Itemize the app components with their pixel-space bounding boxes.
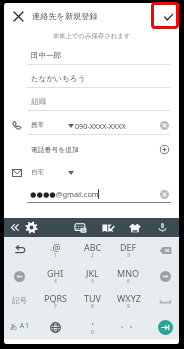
button[interactable]: Dictionary [99,218,116,237]
button[interactable]: Theme [126,218,143,237]
button[interactable]: Voice input [154,218,171,237]
button[interactable]: Enter [158,320,173,335]
button[interactable]: ・ [74,314,111,340]
button[interactable]: Backspace [147,237,179,263]
button[interactable]: PQRS [37,288,74,314]
button[interactable]: Change language [37,314,74,340]
staticText: たなかいちろう [31,74,86,84]
other: Undo [14,244,26,256]
button[interactable]: Settings [23,218,40,237]
staticText: 電話番号を追加 [31,145,79,154]
button[interactable]: WXYZ [110,288,147,314]
button[interactable]: MNO [110,263,147,289]
staticText: PQRS [44,292,68,304]
button[interactable]: 、。 [110,314,147,340]
button[interactable]: TUV [74,288,111,314]
button[interactable]: Clear text [159,120,169,130]
button[interactable]: 田中一郎 [4,45,179,68]
button[interactable]: Enter [147,314,179,340]
button[interactable]: DEF [110,237,147,263]
other: Space [159,295,172,308]
staticText: 、。 [120,318,138,329]
staticText: 記号 [12,296,27,305]
staticText: DEF [120,241,137,253]
button[interactable]: Collapse keyboard [6,218,23,237]
staticText: 携帯 [31,121,44,129]
button[interactable]: 組織 [4,91,179,114]
button[interactable]: ●●●●@gmail.com [4,183,179,207]
button[interactable]: Keyboard layout [72,218,89,237]
staticText: 8 [91,303,94,310]
staticText: 連絡先を新規登録 [32,11,98,21]
staticText: あ [10,322,18,331]
button[interactable]: GHI [37,263,74,289]
button[interactable]: Add phone number [159,144,169,154]
staticText: ABC [84,241,102,253]
button[interactable]: ABC [74,237,111,263]
button[interactable]: Clear text [159,189,169,199]
staticText: 自宅 [31,168,44,176]
staticText: A [18,321,25,331]
button[interactable]: 携帯 [4,114,179,137]
staticText: 9 [127,303,130,310]
button[interactable]: 電話番号を追加 [4,138,179,161]
staticText: 7 [54,303,57,310]
button[interactable]: 自宅 [4,161,179,183]
staticText: 2 [91,252,94,259]
other: Move cursor right [160,271,171,282]
other: Change language [50,322,61,333]
button[interactable]: JKL [74,263,111,289]
button[interactable]: 記号 [4,288,38,314]
staticText: 6 [127,278,130,285]
staticText: 5 [91,278,94,285]
other: Move cursor left [14,271,25,282]
staticText: 田中一郎 [31,51,62,61]
button[interactable]: Space [147,288,179,314]
staticText: TUV [84,292,101,304]
staticText: 090-XXXX-XXXX [75,121,126,131]
staticText: 1 [25,321,30,331]
button[interactable]: Move cursor right [147,263,179,289]
staticText: .@ [50,241,61,253]
staticText: WXYZ [117,292,141,304]
staticText: ●●●●@gmail.com [30,189,99,199]
staticText: 1 [54,252,57,259]
button[interactable]: Close [6,4,30,28]
staticText: MNO [117,267,140,279]
button[interactable]: あ [4,314,38,340]
button[interactable]: .@ [37,237,74,263]
button[interactable]: Save contact [151,2,179,29]
button[interactable]: Move cursor left [4,263,38,289]
staticText: ・ [88,318,97,329]
staticText: 組織 [31,97,47,107]
staticText: JKL [86,267,99,279]
button[interactable]: Undo [4,237,38,263]
staticText: 3 [127,252,130,259]
button[interactable]: たなかいちろう [4,68,179,91]
staticText: 4 [54,278,57,285]
staticText: GHI [47,267,64,279]
other: Backspace [159,244,172,257]
button[interactable]: Done [156,5,179,29]
staticText: 0 [91,329,94,336]
staticText: 本体上でのみ保存されます [4,32,179,40]
